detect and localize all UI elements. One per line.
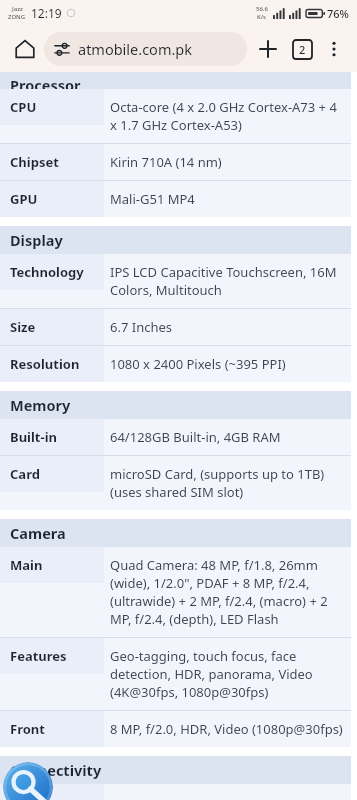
staticText: Size <box>10 318 36 336</box>
button[interactable]: Built-in <box>0 419 351 455</box>
staticText: 76% <box>327 6 349 21</box>
staticText: 64/128GB Built-in, 4GB RAM <box>110 428 281 446</box>
button[interactable]: Connectivity <box>0 756 351 784</box>
staticText: Features <box>10 647 67 665</box>
staticText: 8 MP, f/2.0, HDR, Video (1080p@30fps) <box>110 720 343 738</box>
button[interactable]: WLAN <box>0 784 351 800</box>
staticText: Quad Camera: 48 MP, f/1.8, 26mm (wide), … <box>110 556 345 628</box>
button[interactable]: Chipset <box>0 144 351 180</box>
staticText: Camera <box>10 523 66 543</box>
staticText: Built-in <box>10 428 57 446</box>
staticText: Main <box>10 556 43 574</box>
button[interactable]: Size <box>0 309 351 345</box>
staticText: CPU <box>10 98 37 116</box>
button[interactable]: Tabs: 2 open <box>285 32 319 66</box>
staticText: GPU <box>10 190 38 208</box>
button[interactable]: Home <box>8 32 42 66</box>
staticText: Processor <box>10 75 81 92</box>
button[interactable]: Main <box>0 547 351 637</box>
button[interactable]: Features <box>0 638 351 710</box>
staticText: K/s <box>257 13 267 21</box>
staticText: 6.7 Inches <box>110 318 173 336</box>
staticText: Jazz <box>12 5 23 13</box>
button[interactable]: Camera <box>0 519 351 547</box>
staticText: Resolution <box>10 355 80 373</box>
staticText: Memory <box>10 395 71 415</box>
staticText: 12:19 <box>31 5 62 21</box>
button[interactable]: Front <box>0 711 351 747</box>
staticText: Geo-tagging, touch focus, face detection… <box>110 647 345 701</box>
staticText: 56.6 <box>256 5 268 13</box>
button[interactable]: Search <box>3 762 53 800</box>
staticText: microSD Card, (supports up to 1TB) (uses… <box>110 465 345 501</box>
staticText: Octa-core (4 x 2.0 GHz Cortex-A73 + 4 x … <box>110 98 345 134</box>
button[interactable]: GPU <box>0 181 351 217</box>
staticText: Chipset <box>10 153 59 171</box>
staticText: Display <box>10 230 63 250</box>
staticText: 1080 x 2400 Pixels (~395 PPI) <box>110 355 286 373</box>
staticText: Kirin 710A (14 nm) <box>110 153 222 171</box>
staticText: ZONG <box>8 13 26 21</box>
staticText: Front <box>10 720 45 738</box>
button[interactable]: Memory <box>0 391 351 419</box>
button[interactable]: More options <box>319 34 349 64</box>
button[interactable]: Resolution <box>0 346 351 382</box>
staticText: Technology <box>10 263 84 281</box>
button[interactable]: Technology <box>0 254 351 308</box>
staticText: Card <box>10 465 40 483</box>
button[interactable]: Card <box>0 456 351 510</box>
button[interactable]: Display <box>0 226 351 254</box>
staticText: atmobile.com.pk <box>78 39 192 59</box>
staticText: Mali-G51 MP4 <box>110 190 195 208</box>
button[interactable]: New tab <box>251 32 285 66</box>
button[interactable]: CPU <box>0 89 351 143</box>
staticText: 2 <box>299 42 306 57</box>
button[interactable]: atmobile.com.pk <box>44 32 247 66</box>
staticText: Connectivity <box>10 760 102 780</box>
staticText: IPS LCD Capacitive Touchscreen, 16M Colo… <box>110 263 345 299</box>
